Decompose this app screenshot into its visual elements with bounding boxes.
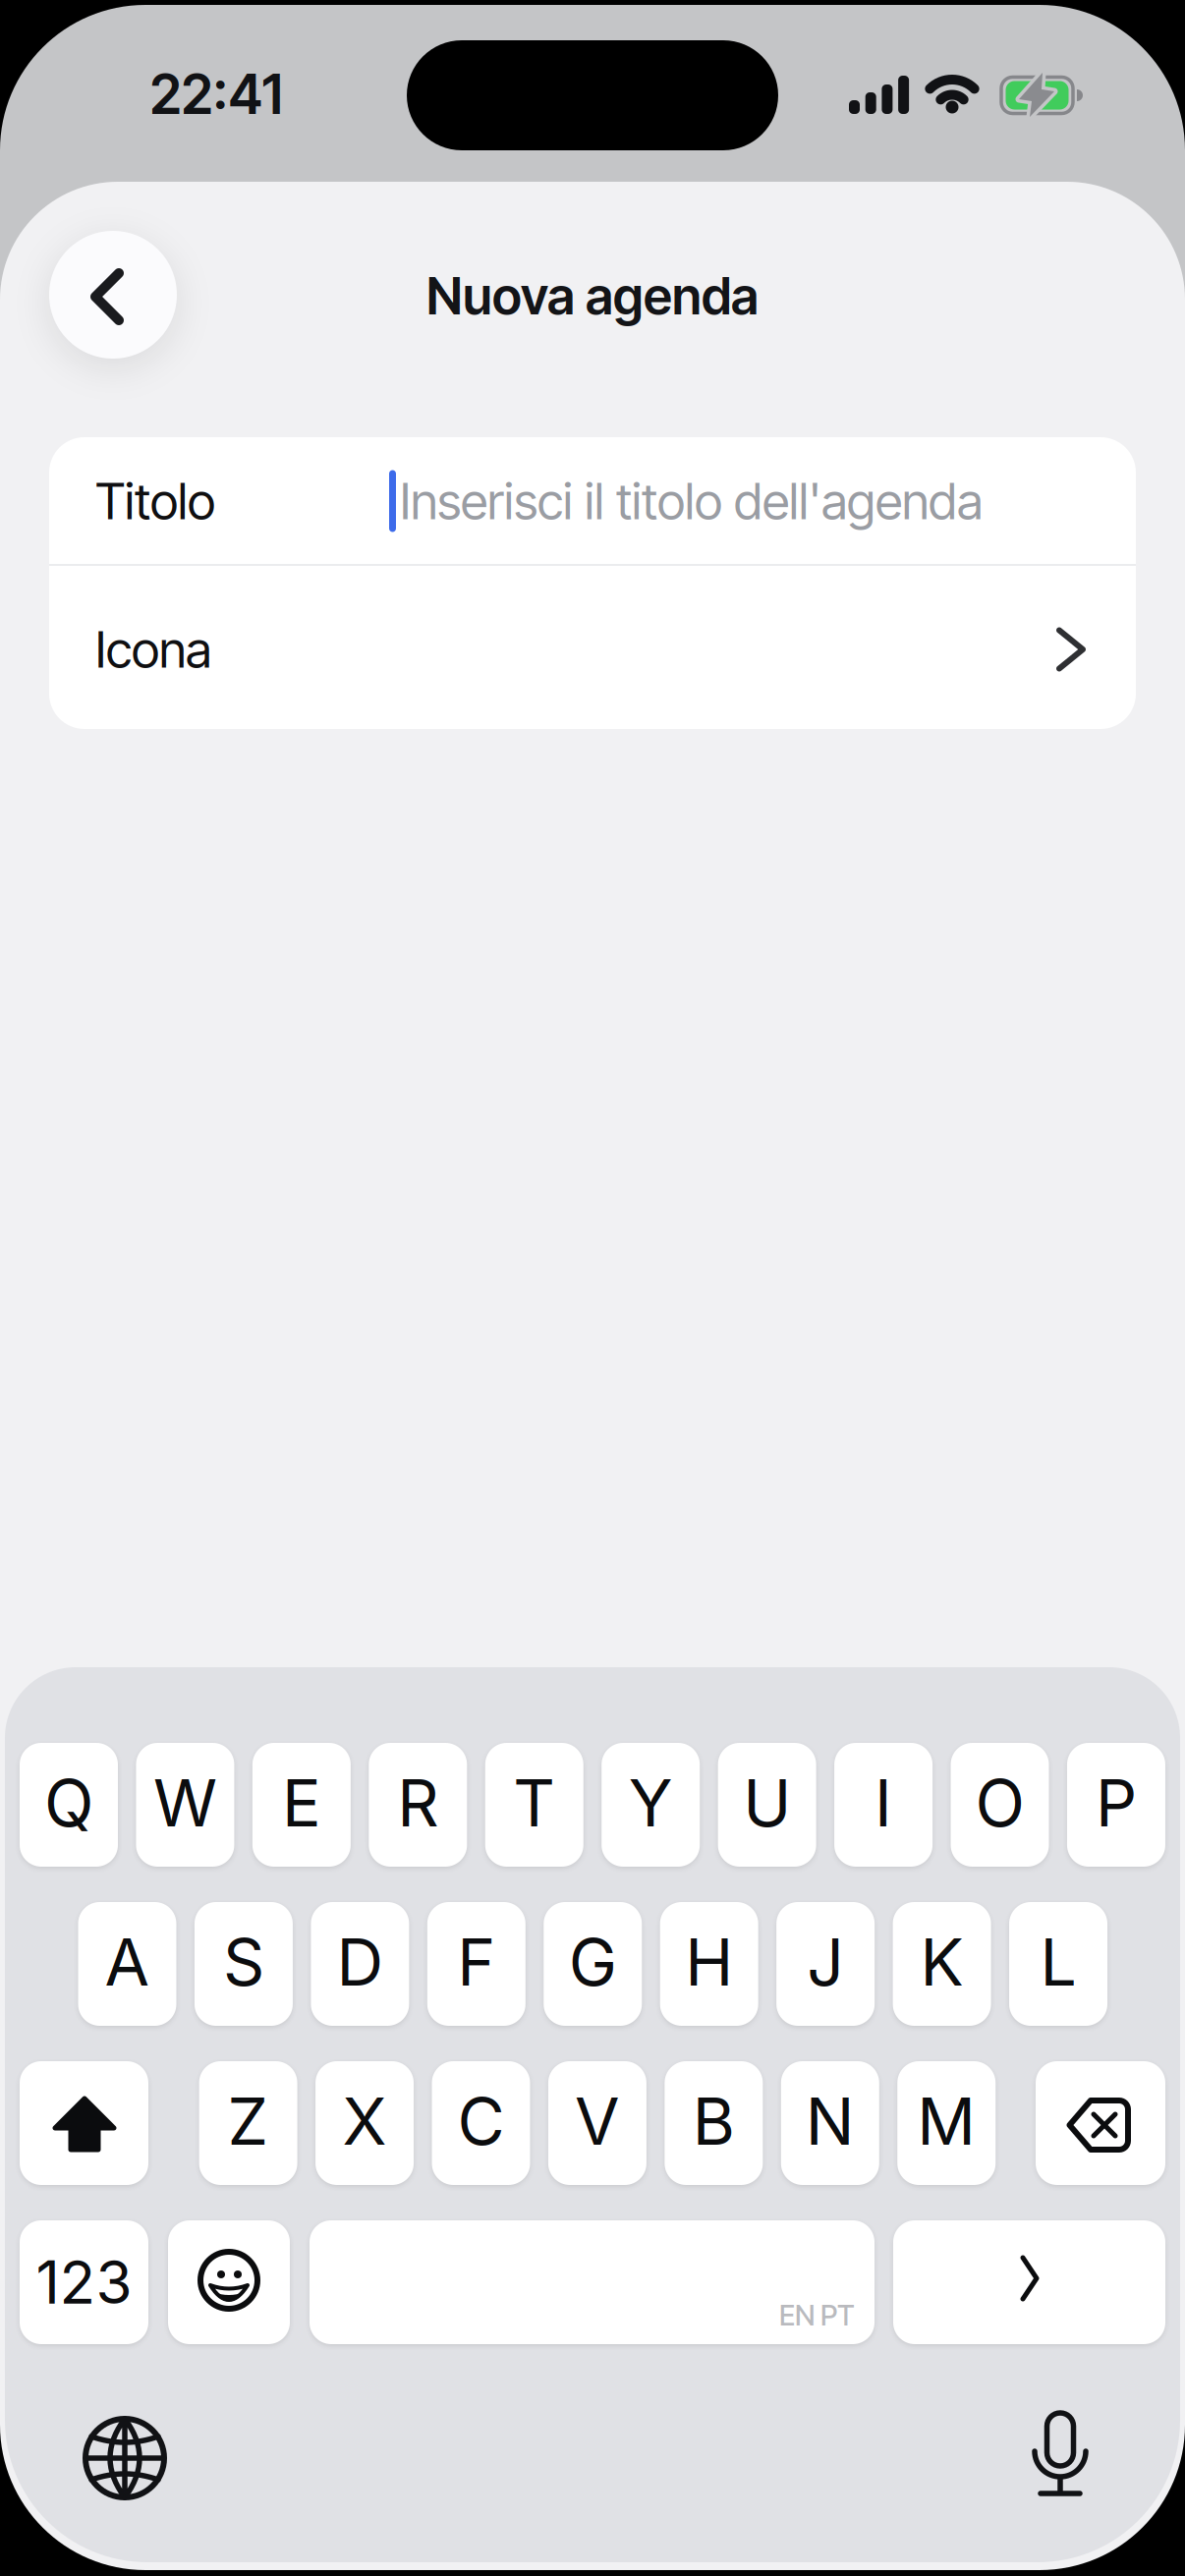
staticText: E	[282, 1764, 321, 1842]
staticText: Icona	[95, 619, 211, 680]
staticText: T	[513, 1764, 555, 1842]
button[interactable]: O	[951, 1743, 1049, 1867]
button[interactable]: B	[665, 2061, 763, 2185]
button[interactable]: P	[1067, 1743, 1165, 1867]
staticText: O	[975, 1764, 1024, 1842]
staticText: Inserisci il titolo dell'agenda	[400, 471, 983, 531]
staticText: U	[743, 1764, 791, 1842]
staticText: 123	[36, 2247, 132, 2318]
button[interactable]: Z	[199, 2061, 297, 2185]
button[interactable]: F	[427, 1902, 525, 2026]
button[interactable]: Titolo	[49, 437, 1136, 565]
button[interactable]: K	[893, 1902, 991, 2026]
button[interactable]: H	[660, 1902, 758, 2026]
staticText: C	[457, 2082, 505, 2160]
button[interactable]: EN PT	[310, 2220, 875, 2344]
button[interactable]: I	[834, 1743, 933, 1867]
button[interactable]: C	[432, 2061, 530, 2185]
staticText: 22:41	[150, 62, 282, 127]
staticText: J	[807, 1923, 844, 2001]
staticText: D	[336, 1923, 384, 2001]
staticText: Z	[228, 2082, 269, 2160]
button[interactable]: 123	[20, 2220, 148, 2344]
staticText: X	[342, 2082, 387, 2160]
staticText: G	[569, 1923, 617, 2001]
button[interactable]: M	[897, 2061, 996, 2185]
button[interactable]: G	[544, 1902, 642, 2026]
staticText: H	[685, 1923, 733, 2001]
staticText: Y	[629, 1764, 673, 1842]
staticText: F	[457, 1923, 496, 2001]
staticText: A	[105, 1923, 150, 2001]
staticText: M	[917, 2082, 976, 2160]
button[interactable]: L	[1009, 1902, 1107, 2026]
button[interactable]	[893, 2220, 1165, 2344]
staticText: P	[1096, 1764, 1137, 1842]
button[interactable]: Y	[602, 1743, 700, 1867]
staticText: Titolo	[95, 471, 215, 531]
button[interactable]: D	[311, 1902, 409, 2026]
staticText: EN PT	[779, 2298, 855, 2332]
staticText: S	[223, 1923, 264, 2001]
staticText: L	[1040, 1923, 1076, 2001]
button[interactable]: Q	[20, 1743, 118, 1867]
staticText: B	[693, 2082, 735, 2160]
button[interactable]: V	[548, 2061, 646, 2185]
button[interactable]: S	[194, 1902, 293, 2026]
button[interactable]	[168, 2220, 290, 2344]
button[interactable]: R	[369, 1743, 467, 1867]
button[interactable]: E	[252, 1743, 351, 1867]
staticText: K	[920, 1923, 964, 2001]
button[interactable]: N	[781, 2061, 879, 2185]
button[interactable]	[49, 231, 177, 359]
button[interactable]: U	[718, 1743, 816, 1867]
button[interactable]: W	[136, 1743, 234, 1867]
staticText: W	[153, 1764, 217, 1842]
button[interactable]	[1036, 2061, 1165, 2185]
staticText: Q	[44, 1764, 93, 1842]
button[interactable]: A	[78, 1902, 176, 2026]
button[interactable]: T	[485, 1743, 583, 1867]
button[interactable]: Icona	[49, 567, 1136, 731]
button[interactable]	[20, 2061, 148, 2185]
staticText: R	[397, 1764, 439, 1842]
button[interactable]: J	[776, 1902, 875, 2026]
staticText: Nuova agenda	[426, 265, 759, 327]
staticText: I	[875, 1764, 892, 1842]
staticText: V	[575, 2082, 620, 2160]
staticText: N	[806, 2082, 855, 2160]
button[interactable]	[1006, 2405, 1114, 2513]
button[interactable]: X	[315, 2061, 414, 2185]
button[interactable]	[71, 2404, 179, 2512]
